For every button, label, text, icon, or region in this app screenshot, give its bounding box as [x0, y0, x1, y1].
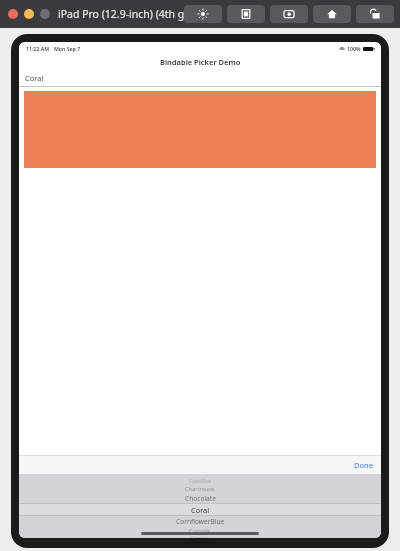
button[interactable]: Minimize: [24, 9, 34, 19]
staticText: Coral: [25, 73, 44, 83]
staticText: Coral: [191, 505, 210, 515]
staticText: Chocolate: [185, 494, 216, 503]
button[interactable]: Share: [356, 5, 394, 23]
button[interactable]: Chocolate: [19, 493, 381, 503]
staticText: iPad Pro (12.9-inch) (4th gene…: [58, 7, 211, 21]
button[interactable]: Zoom: [40, 9, 50, 19]
staticText: 11:22 AM: [26, 45, 49, 52]
button[interactable]: Done: [346, 458, 381, 472]
button[interactable]: Screenshot: [270, 5, 308, 23]
button[interactable]: Cornsilk: [19, 526, 381, 535]
button[interactable]: CornflowerBlue: [19, 516, 381, 526]
staticText: CadetBlue: [189, 478, 212, 484]
button[interactable]: Appearance: [184, 5, 222, 23]
button[interactable]: Crimson: [19, 535, 381, 538]
staticText: Cornsilk: [189, 527, 211, 535]
staticText: CornflowerBlue: [176, 517, 225, 526]
staticText: Done: [354, 460, 373, 470]
button[interactable]: Coral: [19, 70, 381, 86]
staticText: 100%: [347, 45, 361, 52]
button[interactable]: Chartreuse: [19, 484, 381, 493]
staticText: Crimson: [191, 535, 210, 538]
staticText: Mon Sep 7: [54, 45, 81, 52]
button[interactable]: Keyboard: [227, 5, 265, 23]
staticText: Bindable Picker Demo: [160, 57, 241, 67]
button[interactable]: Home: [313, 5, 351, 23]
staticText: Chartreuse: [185, 485, 215, 493]
button[interactable]: Close: [8, 9, 18, 19]
